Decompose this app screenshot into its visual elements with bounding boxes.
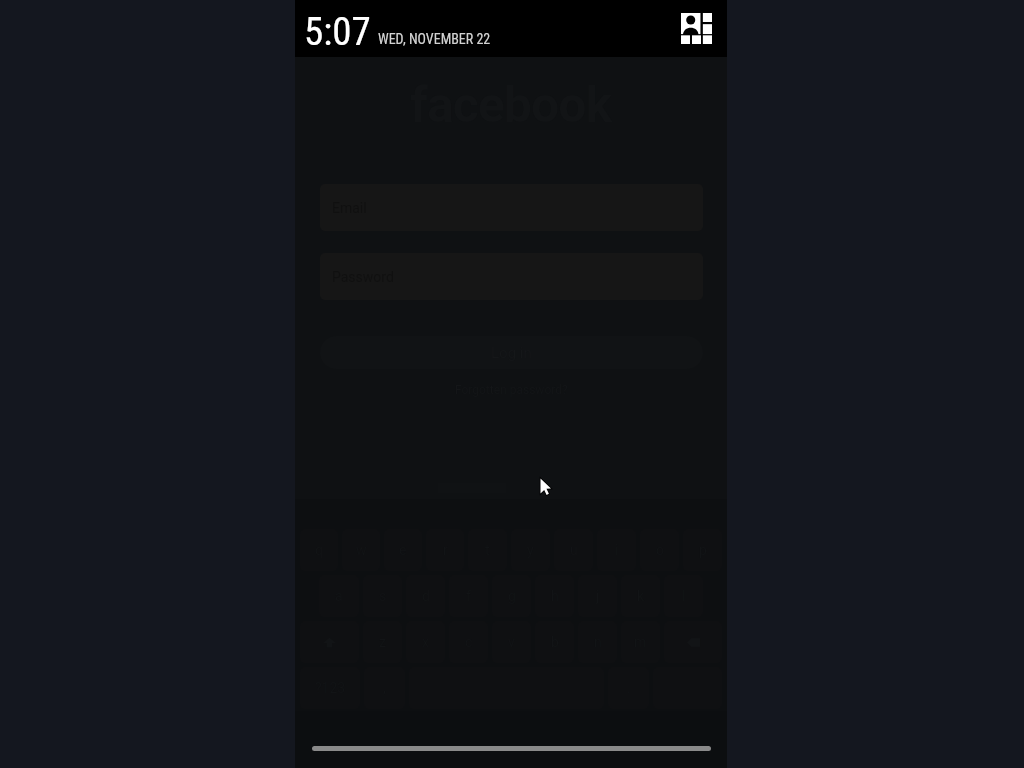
staticText: 5:07	[304, 9, 371, 55]
staticText: WED, NOVEMBER 22	[378, 31, 491, 47]
button[interactable]: Switch user	[676, 8, 717, 49]
